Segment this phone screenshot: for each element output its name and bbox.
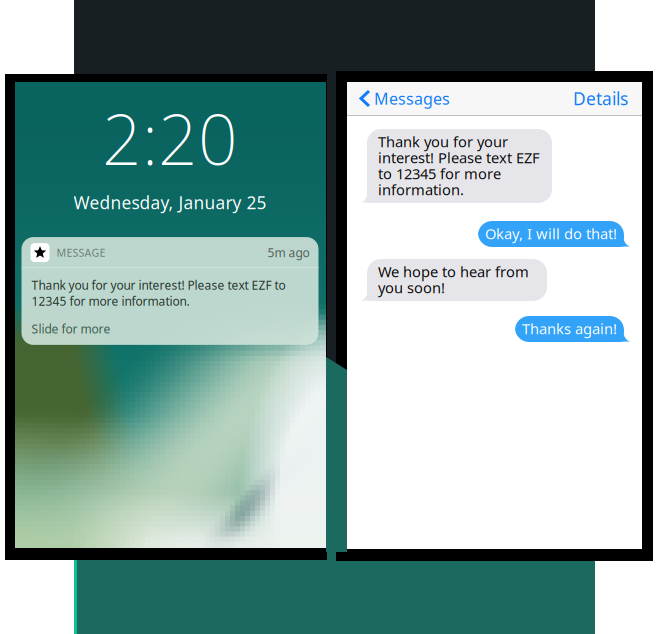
staticText: Wednesday, January 25 [73,191,266,214]
staticText: Thanks again! [522,319,617,338]
staticText: 5m ago [267,245,309,260]
staticText: Details [573,87,628,110]
staticText: Okay, I will do that! [485,224,617,243]
staticText: MESSAGE [56,245,105,260]
staticText: Thank you for your interest! Please text… [31,277,285,309]
button[interactable]: Messages [353,83,458,114]
staticText: you soon! [378,278,445,297]
staticText: 2:20 [102,92,238,184]
staticText: Messages [374,88,450,109]
staticText: to 12345 for more [378,164,501,183]
staticText: Slide for more [31,321,110,337]
staticText: information. [378,180,464,199]
staticText: interest! Please text EZF [378,148,540,167]
staticText: We hope to hear from [378,262,529,281]
button[interactable]: MESSAGE [21,237,318,345]
button[interactable]: Details [565,82,636,115]
staticText: Thank you for your [378,132,508,151]
